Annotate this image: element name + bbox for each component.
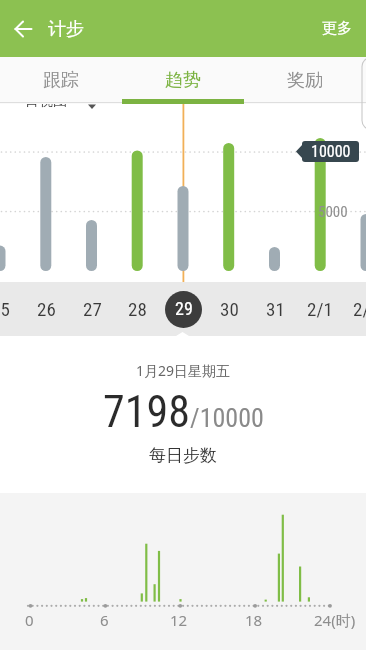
staticText: 7198 xyxy=(103,386,190,438)
button[interactable]: 27 xyxy=(70,290,114,327)
staticText: 每日步数 xyxy=(149,445,217,466)
staticText: 31 xyxy=(266,298,285,320)
button[interactable]: 28 xyxy=(115,290,159,327)
staticText: 6 xyxy=(100,610,109,630)
staticText: 29 xyxy=(175,298,193,319)
staticText: 计步 xyxy=(48,18,84,41)
staticText: 5000 xyxy=(318,203,348,221)
button[interactable]: 2/2 xyxy=(344,290,366,327)
staticText: 日视图 xyxy=(25,92,67,110)
button[interactable]: 2/1 xyxy=(298,290,342,327)
staticText: 0 xyxy=(25,610,34,630)
button[interactable] xyxy=(18,102,106,116)
staticText: 2/1 xyxy=(307,298,333,320)
button[interactable]: 跟踪 xyxy=(0,57,122,104)
staticText: 26 xyxy=(37,298,56,320)
staticText: 2/2 xyxy=(353,298,366,320)
staticText: 奖励 xyxy=(287,69,323,92)
staticText: 10000 xyxy=(311,142,351,161)
staticText: 30 xyxy=(220,298,239,320)
staticText: 1月29日星期五 xyxy=(136,361,231,380)
staticText: 28 xyxy=(128,298,147,320)
button[interactable]: 26 xyxy=(24,290,68,327)
staticText: /10000 xyxy=(190,403,264,433)
staticText: 更多 xyxy=(322,19,352,38)
button[interactable]: 30 xyxy=(207,290,251,327)
button[interactable]: 趋势 xyxy=(122,57,244,104)
button[interactable]: 更多 xyxy=(316,13,358,44)
button[interactable] xyxy=(4,10,42,48)
button[interactable]: 31 xyxy=(253,290,297,327)
button[interactable]: 奖励 xyxy=(244,57,366,104)
staticText: 12 xyxy=(170,610,188,630)
staticText: 27 xyxy=(83,298,102,320)
staticText: 25 xyxy=(0,298,10,320)
staticText: 24(时) xyxy=(314,610,356,630)
staticText: 18 xyxy=(245,610,263,630)
button[interactable]: 25 xyxy=(0,290,22,327)
staticText: 跟踪 xyxy=(43,69,79,92)
staticText: 趋势 xyxy=(165,69,201,92)
button[interactable]: 29 xyxy=(165,291,202,328)
